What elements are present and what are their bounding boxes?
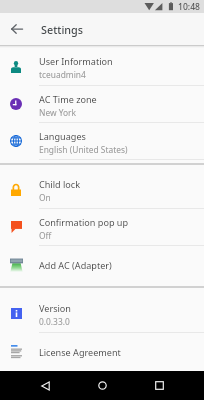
staticText: Version — [39, 302, 71, 314]
staticText: Languages — [39, 130, 86, 142]
staticText: On — [39, 192, 51, 203]
staticText: Confirmation pop up — [39, 216, 129, 228]
staticText: Off — [39, 230, 52, 241]
button[interactable]: Version — [0, 294, 204, 332]
staticText: Add AC (Adapter) — [39, 259, 112, 271]
staticText: 10:48 — [178, 1, 201, 13]
staticText: 0.0.33.0 — [39, 316, 70, 327]
button[interactable]: AC Time zone — [0, 86, 204, 122]
button[interactable]: Languages — [0, 123, 204, 159]
staticText: Settings — [41, 22, 84, 37]
button[interactable]: Back — [34, 374, 57, 397]
button[interactable]: Home — [91, 374, 114, 397]
button[interactable]: Child lock — [0, 171, 204, 208]
staticText: New York — [39, 107, 77, 118]
staticText: AC Time zone — [39, 93, 97, 105]
button[interactable]: Confirmation pop up — [0, 209, 204, 245]
staticText: Child lock — [39, 178, 81, 190]
staticText: License Agreement — [39, 346, 121, 358]
button[interactable]: Recent apps — [148, 374, 171, 397]
button[interactable]: License Agreement — [0, 333, 204, 370]
staticText: tceuadmin4 — [39, 69, 86, 80]
button[interactable]: Add AC (Adapter) — [0, 246, 204, 283]
staticText: English (United States) — [39, 144, 128, 155]
button[interactable]: User Information — [0, 48, 204, 85]
button[interactable]: Back — [3, 15, 31, 43]
staticText: User Information — [39, 55, 113, 67]
